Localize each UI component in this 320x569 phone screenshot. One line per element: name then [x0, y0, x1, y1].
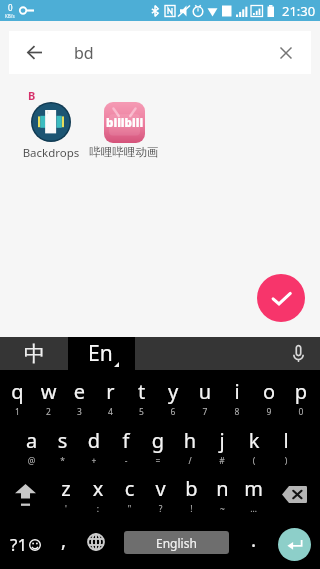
staticText: b	[176, 475, 207, 502]
button[interactable]: f	[110, 420, 142, 470]
staticText: 中	[24, 341, 45, 367]
staticText: r	[95, 378, 126, 405]
button[interactable]: Confirm	[257, 274, 305, 322]
staticText: k	[238, 427, 270, 454]
button[interactable]: h	[174, 420, 206, 470]
button[interactable]: English	[124, 531, 229, 554]
staticText: y	[157, 378, 189, 405]
staticText: B	[28, 88, 36, 103]
button[interactable]: Change language	[82, 519, 110, 569]
button[interactable]: ,	[46, 519, 82, 569]
staticText: i	[221, 378, 253, 405]
staticText: +	[78, 455, 110, 467]
button[interactable]: s	[47, 420, 78, 470]
button[interactable]: p	[285, 370, 317, 420]
button[interactable]: x	[82, 470, 114, 519]
button[interactable]: m	[238, 470, 269, 519]
button[interactable]: Enter	[278, 528, 311, 561]
staticText: bd	[74, 42, 94, 64]
button[interactable]: k	[238, 420, 270, 470]
staticText: 8	[221, 406, 253, 418]
staticText: 0	[8, 2, 13, 13]
staticText: -	[110, 455, 142, 467]
button[interactable]: r	[95, 370, 126, 420]
staticText: n	[207, 475, 238, 502]
button[interactable]: .	[240, 519, 268, 569]
staticText: a	[16, 427, 47, 454]
staticText: English	[156, 535, 197, 551]
button[interactable]: e	[64, 370, 95, 420]
staticText: 4	[95, 406, 126, 418]
button[interactable]: q	[2, 370, 33, 420]
button[interactable]: w	[33, 370, 64, 420]
button[interactable]: j	[206, 420, 238, 470]
staticText: 2	[33, 406, 64, 418]
staticText: /	[174, 455, 206, 467]
staticText: o	[253, 378, 285, 405]
button[interactable]: n	[207, 470, 238, 519]
button[interactable]: 中	[0, 337, 68, 370]
staticText: En	[88, 339, 113, 368]
button[interactable]: Clear text	[260, 31, 311, 74]
button[interactable]: o	[253, 370, 285, 420]
staticText: q	[2, 378, 33, 405]
button[interactable]: Symbols and emoji	[0, 519, 46, 569]
staticText: bilibili	[106, 115, 144, 131]
button[interactable]: Backdrops	[13, 101, 89, 161]
button[interactable]: z	[50, 470, 82, 519]
staticText: x	[82, 475, 114, 502]
staticText: ,	[61, 527, 67, 553]
staticText: g	[142, 427, 174, 454]
staticText: !	[176, 503, 207, 515]
staticText: Backdrops	[13, 145, 89, 161]
staticText: ~	[207, 503, 238, 515]
button[interactable]: t	[126, 370, 157, 420]
staticText: …	[238, 503, 269, 515]
staticText: 21:30	[282, 2, 316, 20]
staticText: u	[189, 378, 221, 405]
staticText: l	[270, 427, 302, 454]
staticText: v	[145, 475, 176, 502]
staticText: h	[174, 427, 206, 454]
button[interactable]: Voice input	[276, 337, 320, 370]
staticText: 9	[253, 406, 285, 418]
button[interactable]: Back	[9, 31, 59, 74]
button[interactable]: g	[142, 420, 174, 470]
staticText: =	[142, 455, 174, 467]
staticText: "	[114, 503, 145, 515]
staticText: 5	[126, 406, 157, 418]
staticText: ?	[145, 503, 176, 515]
button[interactable]: u	[189, 370, 221, 420]
button[interactable]: v	[145, 470, 176, 519]
staticText: :	[82, 503, 114, 515]
button[interactable]: a	[16, 420, 47, 470]
button[interactable]: Backspace	[269, 470, 320, 519]
staticText: ?1	[10, 533, 28, 556]
button[interactable]: Shift	[0, 470, 50, 519]
button[interactable]: l	[270, 420, 302, 470]
staticText: 3	[64, 406, 95, 418]
staticText: KB/s	[5, 13, 15, 19]
staticText: c	[114, 475, 145, 502]
staticText: '	[50, 503, 82, 515]
staticText: m	[238, 475, 269, 502]
staticText: )	[270, 455, 302, 467]
staticText: (	[238, 455, 270, 467]
button[interactable]: En	[68, 337, 135, 370]
staticText: 7	[189, 406, 221, 418]
staticText: .	[251, 527, 257, 553]
staticText: j	[206, 427, 238, 454]
button[interactable]: y	[157, 370, 189, 420]
button[interactable]: c	[114, 470, 145, 519]
staticText: #	[206, 455, 238, 467]
button[interactable]: d	[78, 420, 110, 470]
staticText: w	[33, 378, 64, 405]
staticText: t	[126, 378, 157, 405]
staticText: 6	[157, 406, 189, 418]
button[interactable]: bilibili	[86, 101, 162, 159]
staticText: d	[78, 427, 110, 454]
staticText: f	[110, 427, 142, 454]
button[interactable]: b	[176, 470, 207, 519]
button[interactable]: i	[221, 370, 253, 420]
staticText: @	[16, 455, 47, 467]
